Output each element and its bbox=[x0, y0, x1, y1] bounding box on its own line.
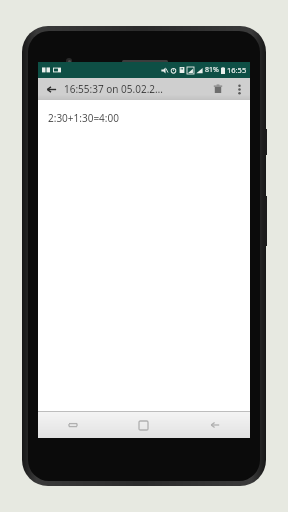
button[interactable]: Recent apps bbox=[38, 412, 108, 438]
staticText: 81% bbox=[205, 65, 219, 75]
staticText: 2:30+1:30=4:00 bbox=[48, 111, 119, 125]
button[interactable]: Back bbox=[179, 412, 250, 438]
staticText: 16:55:37 on 05.02.2… bbox=[64, 82, 163, 96]
staticText: 16:55 bbox=[227, 65, 247, 75]
button[interactable]: Home bbox=[108, 412, 179, 438]
button[interactable]: More options bbox=[230, 78, 248, 100]
button[interactable]: Back bbox=[38, 78, 64, 100]
button[interactable]: Delete bbox=[206, 78, 230, 100]
